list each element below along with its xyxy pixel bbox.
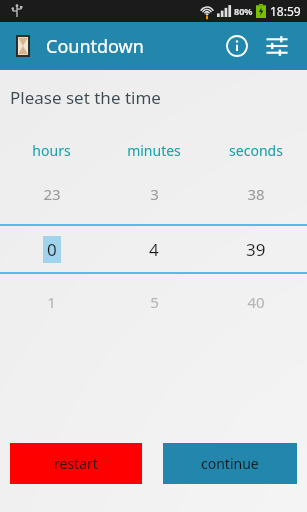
staticText: minutes — [127, 141, 181, 160]
button[interactable]: 0 — [47, 238, 57, 261]
staticText: continue — [201, 454, 259, 473]
staticText: 23 — [43, 184, 61, 204]
staticText: hours — [32, 141, 71, 160]
button[interactable]: restart — [10, 443, 142, 484]
staticText: 38 — [247, 184, 265, 204]
staticText: 5 — [150, 292, 159, 312]
button[interactable] — [10, 33, 36, 59]
staticText: 39 — [246, 238, 266, 261]
staticText: restart — [54, 454, 98, 473]
staticText: Please set the time — [10, 86, 161, 109]
button[interactable]: Settings — [257, 26, 297, 66]
staticText: 18:59 — [270, 3, 301, 19]
staticText: 4 — [149, 238, 159, 261]
staticText: 0 — [47, 238, 57, 261]
staticText: 80% — [234, 5, 253, 17]
staticText: 40 — [247, 292, 265, 312]
button[interactable]: continue — [163, 443, 297, 484]
staticText: 3 — [150, 184, 159, 204]
button[interactable]: Info — [217, 26, 257, 66]
staticText: 1 — [47, 292, 56, 312]
staticText: Countdown — [46, 34, 144, 59]
staticText: seconds — [229, 141, 283, 160]
